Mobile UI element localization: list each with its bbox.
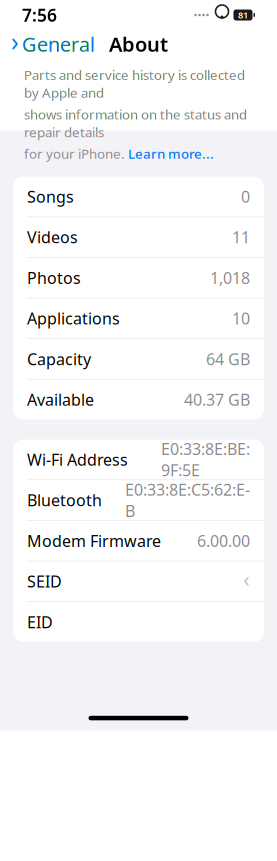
- staticText: 81: [238, 9, 248, 21]
- staticText: for your iPhone.: [24, 145, 128, 162]
- staticText: Capacity: [27, 348, 91, 369]
- button[interactable]: EID: [13, 602, 264, 642]
- staticText: Applications: [27, 308, 120, 329]
- button[interactable]: Wi-Fi Address: [13, 439, 264, 480]
- button[interactable]: Capacity: [13, 339, 264, 379]
- staticText: 11: [232, 226, 250, 248]
- staticText: 10: [232, 308, 250, 329]
- button[interactable]: Bluetooth: [13, 480, 264, 521]
- staticText: General: [22, 31, 95, 57]
- staticText: Songs: [27, 186, 74, 207]
- button[interactable]: Photos: [13, 258, 264, 298]
- staticText: E0:33:8E:BE:9F:5E: [161, 438, 250, 481]
- button[interactable]: Songs: [13, 176, 264, 217]
- button[interactable]: Applications: [13, 298, 264, 339]
- staticText: SEID: [27, 571, 62, 592]
- staticText: 64 GB: [206, 348, 250, 369]
- staticText: Photos: [27, 267, 81, 288]
- staticText: 40.37 GB: [184, 389, 250, 410]
- button[interactable]: Videos: [13, 217, 264, 258]
- button[interactable]: Modem Firmware: [13, 521, 264, 561]
- staticText: 1,018: [210, 267, 250, 288]
- button[interactable]: SEID: [13, 561, 264, 602]
- staticText: 6.00.00: [197, 530, 250, 551]
- staticText: Videos: [27, 226, 78, 248]
- staticText: EID: [27, 611, 53, 632]
- staticText: Learn more...: [128, 145, 214, 162]
- staticText: Available: [27, 389, 94, 410]
- staticText: Bluetooth: [27, 489, 102, 511]
- button[interactable]: General: [3, 27, 103, 61]
- staticText: E0:33:8E:C5:62:EB: [125, 479, 250, 521]
- button[interactable]: Available: [13, 379, 264, 419]
- staticText: Modem Firmware: [27, 530, 161, 551]
- staticText: Parts and service history is collected b…: [24, 66, 245, 101]
- button[interactable]: Learn more...: [128, 145, 214, 162]
- staticText: shows information on the status and repa…: [24, 105, 247, 141]
- staticText: Wi-Fi Address: [27, 449, 128, 470]
- staticText: 0: [241, 186, 250, 207]
